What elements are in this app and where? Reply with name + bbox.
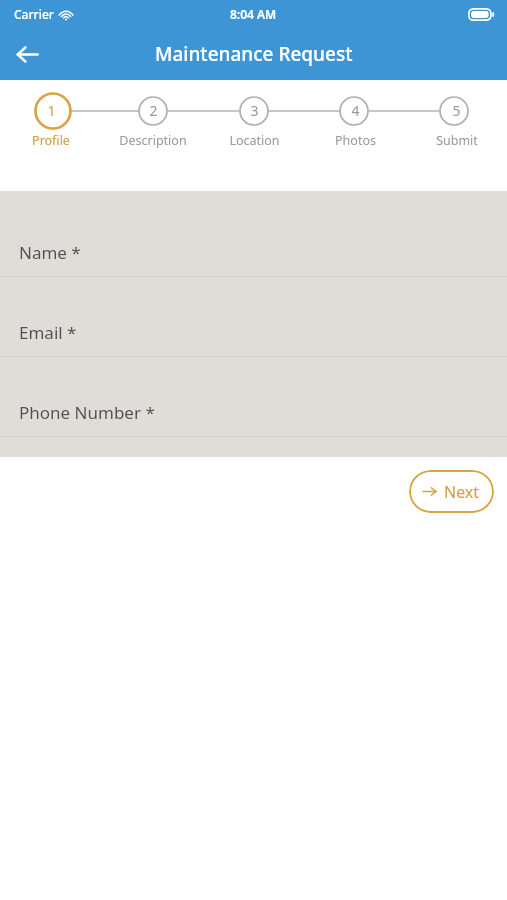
staticText: Next <box>444 481 480 503</box>
staticText: 8:04 AM <box>230 6 277 22</box>
button[interactable]: 1 <box>0 80 102 191</box>
staticText: 2 <box>149 101 158 120</box>
button[interactable]: 4 <box>305 80 406 191</box>
button[interactable]: 3 <box>204 80 305 191</box>
button[interactable]: 2 <box>102 80 204 191</box>
staticText: Location <box>229 132 280 149</box>
button[interactable]: Back <box>5 32 49 76</box>
staticText: Name * <box>19 241 81 264</box>
staticText: Profile <box>32 132 70 149</box>
button[interactable]: 5 <box>406 80 507 191</box>
button[interactable]: Next <box>409 470 494 513</box>
button[interactable]: Phone Number * <box>0 357 507 437</box>
staticText: Submit <box>436 132 478 149</box>
staticText: 5 <box>452 101 461 120</box>
staticText: 1 <box>47 101 56 120</box>
staticText: 4 <box>351 101 360 120</box>
staticText: Photos <box>335 132 376 149</box>
staticText: Description <box>119 132 187 149</box>
staticText: Phone Number * <box>19 401 155 424</box>
staticText: 3 <box>250 101 259 120</box>
staticText: Carrier <box>14 6 54 22</box>
staticText: Email * <box>19 321 77 344</box>
staticText: Maintenance Request <box>155 41 353 67</box>
button[interactable]: Name * <box>0 191 507 277</box>
button[interactable]: Email * <box>0 277 507 357</box>
